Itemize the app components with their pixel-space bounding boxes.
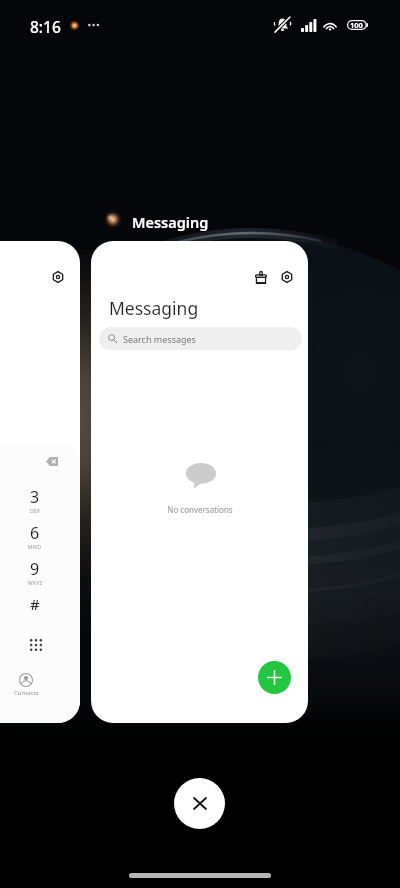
button[interactable]: 3	[18, 486, 52, 515]
staticText: 3	[30, 486, 40, 508]
button[interactable]: Dialer settings	[0, 241, 80, 723]
staticText: DEF	[30, 508, 41, 515]
staticText: 9	[30, 558, 40, 580]
button[interactable]: Clean up	[91, 241, 308, 723]
staticText: Messaging	[109, 296, 199, 320]
staticText: WXYZ	[28, 580, 43, 587]
button[interactable]: 6	[18, 522, 52, 551]
button[interactable]: Search messages	[99, 327, 302, 350]
staticText: Contacts	[14, 689, 39, 697]
button[interactable]: Contacts	[9, 673, 43, 697]
staticText: No conversations	[167, 504, 233, 515]
button[interactable]: New conversation	[258, 661, 291, 694]
staticText: 100	[350, 20, 363, 30]
staticText: 8:16	[30, 16, 61, 37]
staticText: MNO	[28, 544, 42, 551]
button[interactable]: #	[25, 594, 45, 614]
button[interactable]: Clear all	[174, 778, 225, 829]
button[interactable]: Settings	[275, 265, 299, 289]
button[interactable]: Dialer settings	[46, 265, 70, 289]
staticText: 6	[30, 522, 40, 544]
staticText: Messaging	[132, 212, 209, 232]
staticText: #	[30, 594, 40, 614]
staticText: Search messages	[123, 333, 196, 345]
button[interactable]: 9	[18, 558, 52, 587]
button[interactable]: Clean up	[249, 265, 273, 289]
button[interactable]: Backspace	[46, 457, 58, 466]
button[interactable]: Keypad	[27, 636, 45, 654]
